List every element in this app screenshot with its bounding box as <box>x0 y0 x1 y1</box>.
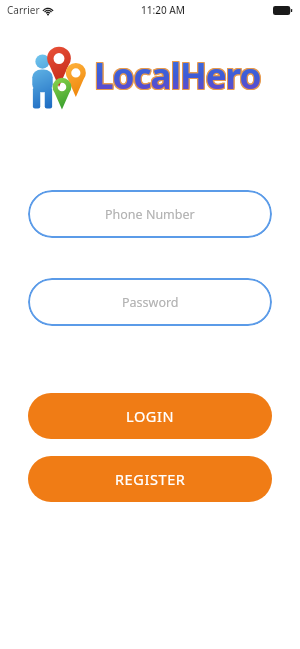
other: LocalHero <box>94 52 261 100</box>
staticText: Carrier <box>7 3 40 17</box>
button[interactable]: REGISTER <box>28 456 272 502</box>
staticText: LocalHero <box>94 52 261 100</box>
staticText: Password <box>122 294 179 311</box>
button[interactable]: Password <box>28 278 272 326</box>
staticText: LocalHero <box>93 53 260 101</box>
staticText: LocalHero <box>94 53 261 101</box>
staticText: REGISTER <box>115 469 186 489</box>
staticText: LOGIN <box>126 406 175 426</box>
staticText: LocalHero <box>95 52 262 100</box>
staticText: LocalHero <box>94 51 261 99</box>
staticText: LocalHero <box>93 51 260 99</box>
button[interactable]: LOGIN <box>28 393 272 439</box>
staticText: LocalHero <box>95 53 262 101</box>
staticText: 11:20 AM <box>141 3 185 17</box>
staticText: LocalHero <box>95 51 262 99</box>
button[interactable]: Phone Number <box>28 190 272 238</box>
staticText: LocalHero <box>93 52 260 100</box>
other: LocalHero logo <box>26 38 92 114</box>
staticText: Phone Number <box>105 206 195 223</box>
